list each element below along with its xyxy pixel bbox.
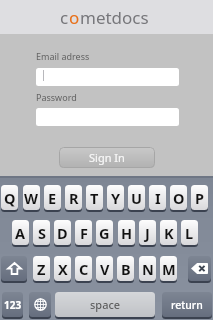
staticText: metdocs <box>80 6 149 29</box>
button[interactable]: N <box>139 256 156 281</box>
button[interactable]: 123 <box>2 292 23 317</box>
button[interactable]: Sign In <box>59 147 155 168</box>
button[interactable]: F <box>75 220 92 245</box>
button[interactable]: Z <box>33 256 50 281</box>
button[interactable]: M <box>160 256 177 281</box>
button[interactable]: E <box>44 185 61 210</box>
button[interactable]: Backspace <box>188 256 211 281</box>
staticText: L <box>185 223 194 243</box>
button[interactable]: A <box>12 220 29 245</box>
staticText: o <box>69 6 80 29</box>
staticText: N <box>142 259 154 279</box>
button[interactable] <box>36 68 179 86</box>
button[interactable]: S <box>33 220 50 245</box>
staticText: O <box>173 188 185 208</box>
button[interactable]: H <box>118 220 135 245</box>
button[interactable]: J <box>139 220 156 245</box>
button[interactable]: C <box>75 256 92 281</box>
button[interactable]: Change keyboard <box>29 292 51 317</box>
staticText: Password <box>36 91 77 103</box>
button[interactable]: space <box>55 292 155 317</box>
staticText: 123 <box>4 298 22 312</box>
staticText: T <box>90 188 99 208</box>
button[interactable]: V <box>96 256 113 281</box>
button[interactable]: U <box>128 185 145 210</box>
button[interactable]: Shift <box>1 256 27 281</box>
staticText: D <box>57 223 68 243</box>
button[interactable]: B <box>117 256 134 281</box>
button[interactable]: W <box>23 185 40 210</box>
staticText: K <box>164 223 174 243</box>
button[interactable]: Y <box>107 185 124 210</box>
staticText: Email adress <box>36 50 90 62</box>
staticText: return <box>171 298 203 312</box>
staticText: U <box>131 188 142 208</box>
button[interactable]: K <box>160 220 177 245</box>
staticText: Q <box>4 188 16 208</box>
staticText: H <box>121 223 133 243</box>
button[interactable]: D <box>54 220 71 245</box>
button[interactable]: R <box>65 185 82 210</box>
staticText: R <box>69 188 79 208</box>
staticText: F <box>80 223 88 243</box>
staticText: X <box>58 259 68 279</box>
staticText: S <box>38 223 46 243</box>
staticText: Z <box>37 259 46 279</box>
button[interactable]: I <box>149 185 166 210</box>
staticText: E <box>48 188 57 208</box>
button[interactable]: P <box>191 185 208 210</box>
button[interactable]: X <box>54 256 71 281</box>
staticText: J <box>145 223 150 243</box>
staticText: Y <box>111 188 121 208</box>
staticText: B <box>121 259 131 279</box>
button[interactable]: O <box>170 185 187 210</box>
staticText: W <box>24 188 39 208</box>
button[interactable]: Q <box>1 185 18 210</box>
staticText: P <box>195 188 205 208</box>
staticText: M <box>162 259 176 279</box>
staticText: V <box>100 259 110 279</box>
staticText: I <box>155 188 161 208</box>
button[interactable]: L <box>181 220 198 245</box>
button[interactable]: T <box>86 185 103 210</box>
staticText: A <box>15 223 26 243</box>
staticText: Sign In <box>89 150 125 165</box>
staticText: space <box>90 297 121 312</box>
staticText: G <box>99 223 110 243</box>
staticText: c <box>60 6 69 29</box>
button[interactable]: G <box>96 220 113 245</box>
button[interactable]: return <box>162 292 212 317</box>
staticText: C <box>79 259 89 279</box>
